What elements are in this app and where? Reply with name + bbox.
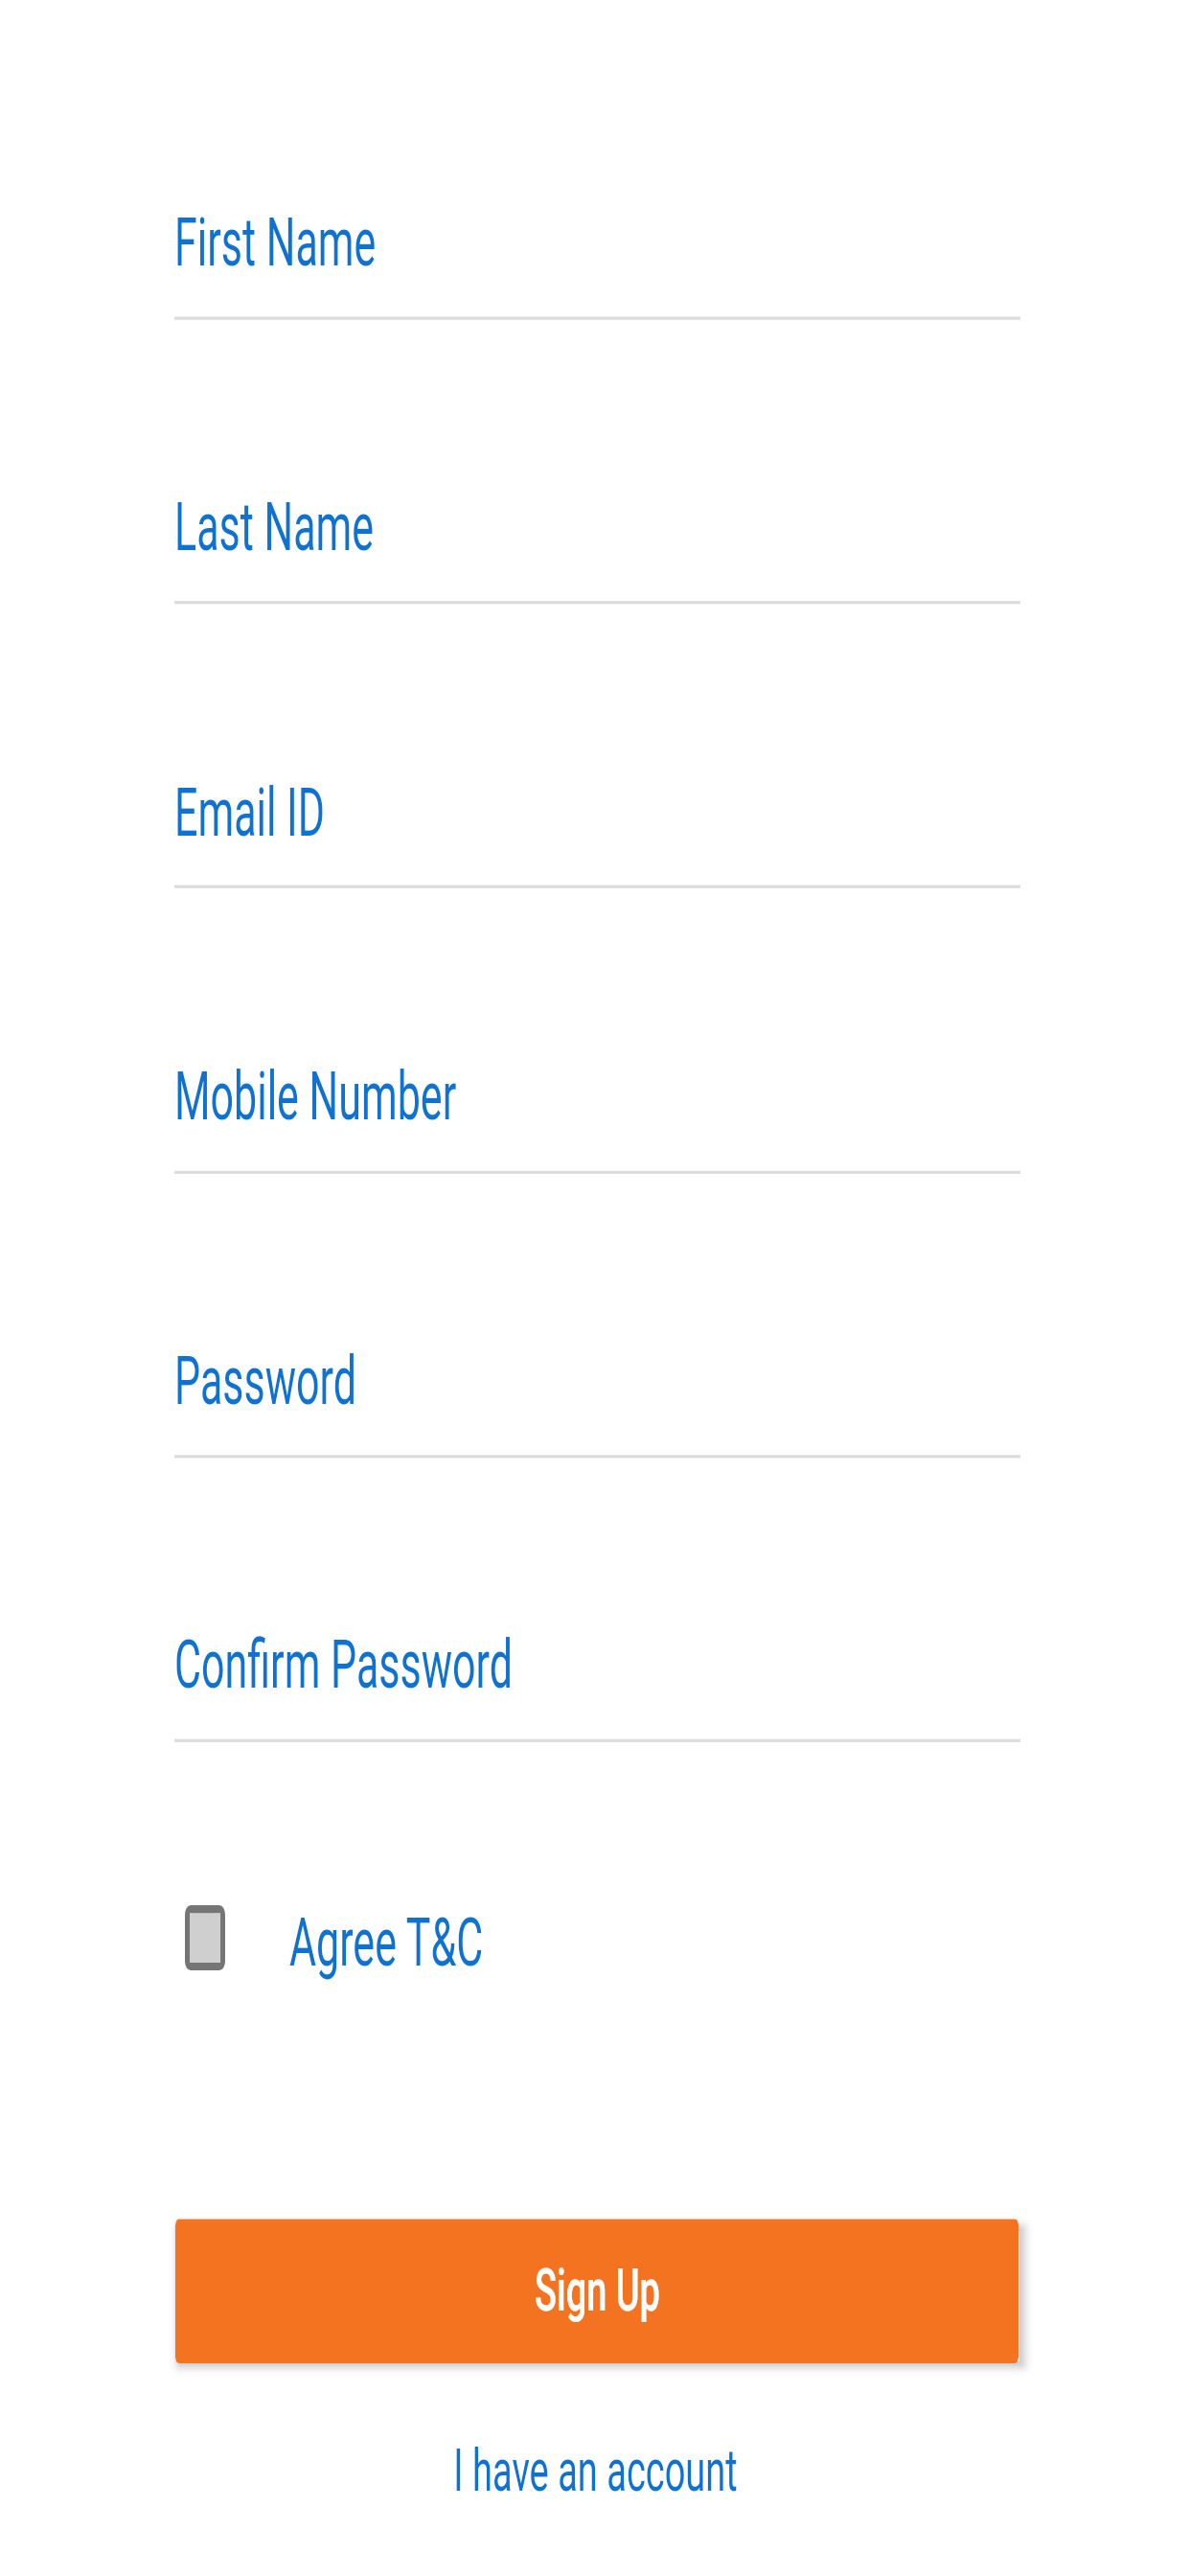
button[interactable] <box>174 495 1020 604</box>
staticText: Last Name <box>174 488 375 565</box>
staticText: Password <box>174 1342 356 1419</box>
button[interactable] <box>283 1905 489 1971</box>
button[interactable] <box>174 780 1020 888</box>
button[interactable]: Agree to terms and conditions <box>185 1905 225 1971</box>
button[interactable] <box>174 1065 1020 1174</box>
button[interactable] <box>174 1633 1020 1742</box>
staticText: I have an account <box>453 2436 738 2506</box>
button[interactable]: Sign Up <box>175 2219 1018 2363</box>
button[interactable] <box>174 211 1020 320</box>
staticText: Agree T&C <box>289 1904 484 1981</box>
button[interactable] <box>174 1349 1020 1458</box>
staticText: Confirm Password <box>174 1626 513 1703</box>
button[interactable]: I have an account <box>0 2432 1190 2509</box>
staticText: Mobile Number <box>174 1057 457 1135</box>
staticText: Email ID <box>174 773 326 851</box>
staticText: Sign Up <box>535 2256 660 2326</box>
staticText: First Name <box>174 203 377 281</box>
